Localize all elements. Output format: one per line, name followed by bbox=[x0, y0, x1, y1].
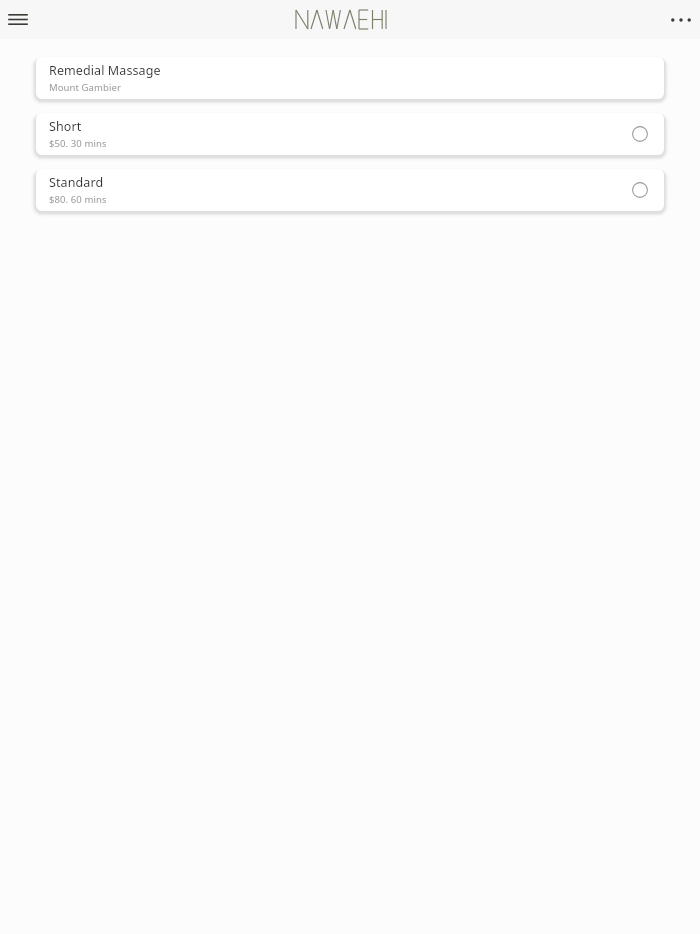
button[interactable]: Select Standard bbox=[630, 180, 650, 200]
button[interactable]: Standard bbox=[36, 169, 664, 211]
button[interactable]: Select Short bbox=[630, 124, 650, 144]
staticText: Standard bbox=[49, 174, 104, 191]
button[interactable]: More options bbox=[662, 0, 700, 39]
staticText: $80. 60 mins bbox=[49, 193, 107, 206]
staticText: Mount Gambier bbox=[49, 81, 122, 94]
button[interactable]: Short bbox=[36, 113, 664, 155]
button[interactable]: Open navigation menu bbox=[0, 0, 36, 39]
staticText: Remedial Massage bbox=[49, 62, 161, 79]
button[interactable] bbox=[296, 10, 404, 29]
button[interactable]: Remedial Massage bbox=[36, 57, 664, 99]
staticText: Short bbox=[49, 118, 82, 135]
staticText: $50. 30 mins bbox=[49, 137, 107, 150]
